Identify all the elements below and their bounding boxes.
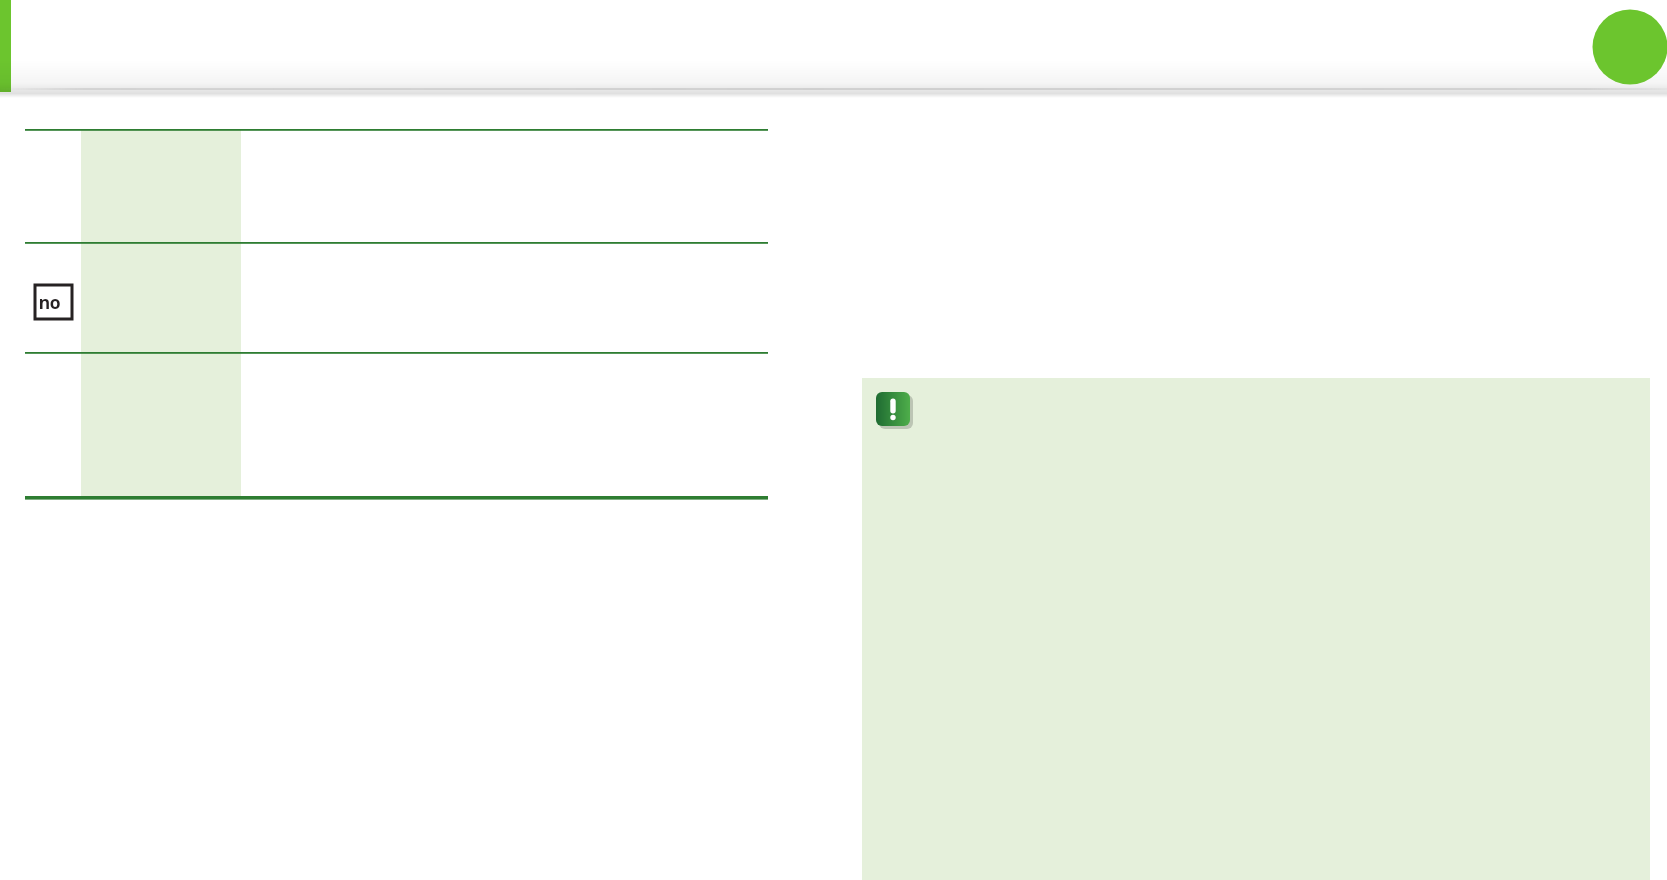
staticText: no [39, 290, 61, 315]
button[interactable]: no [35, 285, 72, 319]
button[interactable]: Chapter marker [1592, 9, 1667, 84]
